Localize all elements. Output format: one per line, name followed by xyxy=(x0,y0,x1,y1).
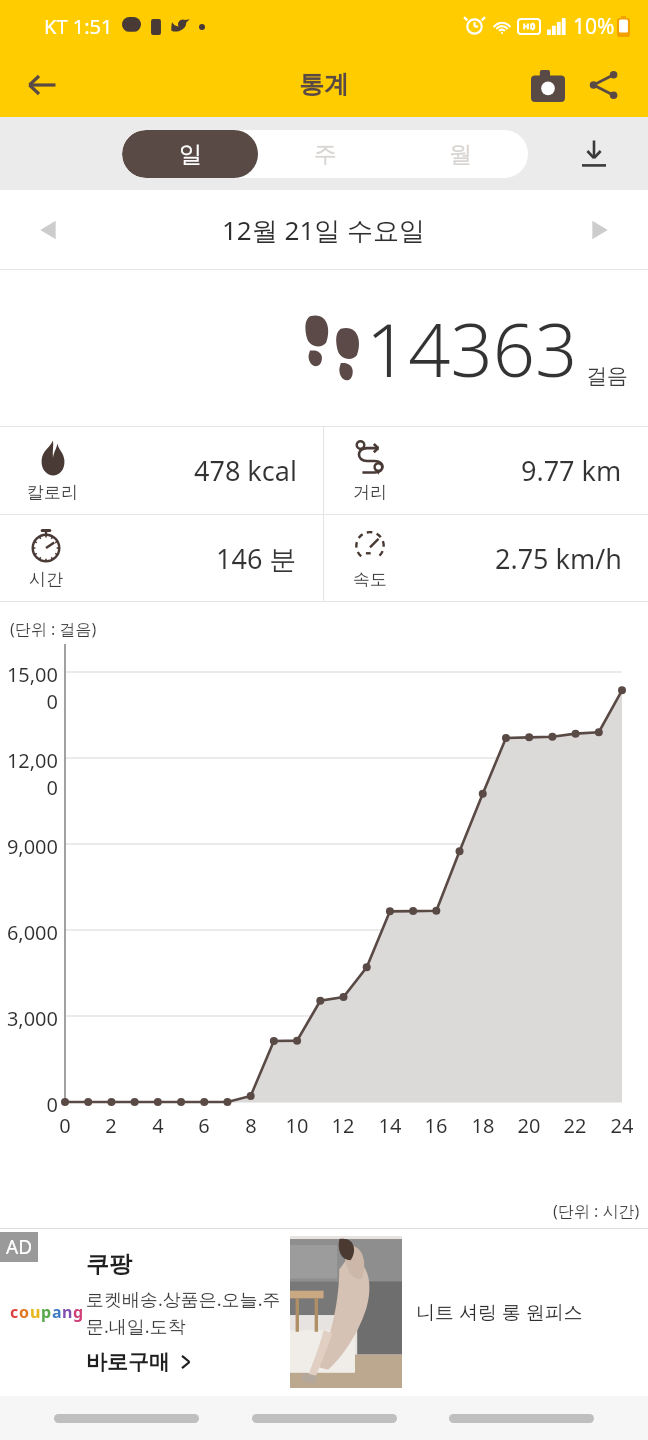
staticText: 18 xyxy=(469,1112,497,1139)
staticText: o xyxy=(19,1301,30,1323)
staticText: n xyxy=(62,1301,73,1323)
staticText: 0 xyxy=(0,1091,58,1118)
staticText: 일 xyxy=(179,140,202,169)
staticText: 바로구매 xyxy=(86,1349,170,1375)
staticText: 2 xyxy=(97,1112,125,1139)
button[interactable]: 일 xyxy=(122,130,258,178)
staticText: 15,000 xyxy=(0,661,58,715)
staticText: 3,000 xyxy=(0,1005,58,1032)
staticText: 24 xyxy=(608,1112,636,1139)
staticText: 146 분 xyxy=(216,540,297,577)
staticText: 14363 xyxy=(366,298,578,399)
staticText: p xyxy=(41,1301,52,1323)
staticText: 통계 xyxy=(299,69,349,100)
staticText: u xyxy=(30,1301,41,1323)
staticText: 9,000 xyxy=(0,833,58,860)
button[interactable]: 시간 xyxy=(0,515,323,601)
button[interactable]: c xyxy=(0,1228,648,1396)
staticText: 주 xyxy=(314,140,337,169)
staticText: 0 xyxy=(51,1112,79,1139)
staticText: AD xyxy=(6,1234,33,1260)
staticText: 16 xyxy=(422,1112,450,1139)
button[interactable]: 칼로리 xyxy=(0,427,323,514)
staticText: a xyxy=(52,1301,62,1323)
staticText: g xyxy=(73,1301,84,1323)
staticText: 시간 xyxy=(29,569,63,590)
staticText: 22 xyxy=(561,1112,589,1139)
staticText: 칼로리 xyxy=(27,482,78,503)
button[interactable]: Previous day xyxy=(22,204,74,256)
staticText: (단위 : 걸음) xyxy=(10,618,97,640)
button[interactable]: 거리 xyxy=(324,427,648,514)
staticText: 9.77 km xyxy=(521,452,622,489)
staticText: 4 xyxy=(144,1112,172,1139)
staticText: 8 xyxy=(237,1112,265,1139)
staticText: 월 xyxy=(449,140,472,169)
button[interactable]: 주 xyxy=(258,130,393,178)
staticText: 거리 xyxy=(353,482,387,503)
staticText: 12월 21일 수요일 xyxy=(222,212,426,248)
staticText: 쿠팡 xyxy=(86,1250,132,1279)
staticText: 10 xyxy=(283,1112,311,1139)
staticText: 6 xyxy=(190,1112,218,1139)
staticText: 12,000 xyxy=(0,747,58,801)
staticText: 20 xyxy=(515,1112,543,1139)
button[interactable]: Navigation xyxy=(54,1414,199,1423)
button[interactable]: Back xyxy=(14,57,70,113)
staticText: KT 1:51 xyxy=(44,13,113,40)
staticText: 로켓배송.상품은.오늘.주문.내일.도착 xyxy=(86,1287,286,1339)
staticText: 478 kcal xyxy=(194,452,297,489)
staticText: 속도 xyxy=(353,569,387,590)
button[interactable]: 속도 xyxy=(324,515,648,601)
staticText: 걸음 xyxy=(586,363,628,389)
staticText: c xyxy=(10,1301,19,1323)
staticText: 2.75 km/h xyxy=(495,540,622,577)
button[interactable]: Navigation xyxy=(252,1414,397,1423)
staticText: 12 xyxy=(329,1112,357,1139)
button[interactable]: 월 xyxy=(393,130,528,178)
button[interactable]: Next day xyxy=(574,204,626,256)
button[interactable]: Download xyxy=(568,128,620,180)
staticText: 니트 셔링 롱 원피스 xyxy=(416,1299,583,1325)
button[interactable]: Camera xyxy=(520,57,576,113)
button[interactable]: Share xyxy=(576,57,632,113)
staticText: 6,000 xyxy=(0,919,58,946)
button[interactable]: Navigation xyxy=(449,1414,594,1423)
staticText: 14 xyxy=(376,1112,404,1139)
staticText: 10% xyxy=(573,12,615,41)
staticText: (단위 : 시간) xyxy=(553,1200,640,1222)
